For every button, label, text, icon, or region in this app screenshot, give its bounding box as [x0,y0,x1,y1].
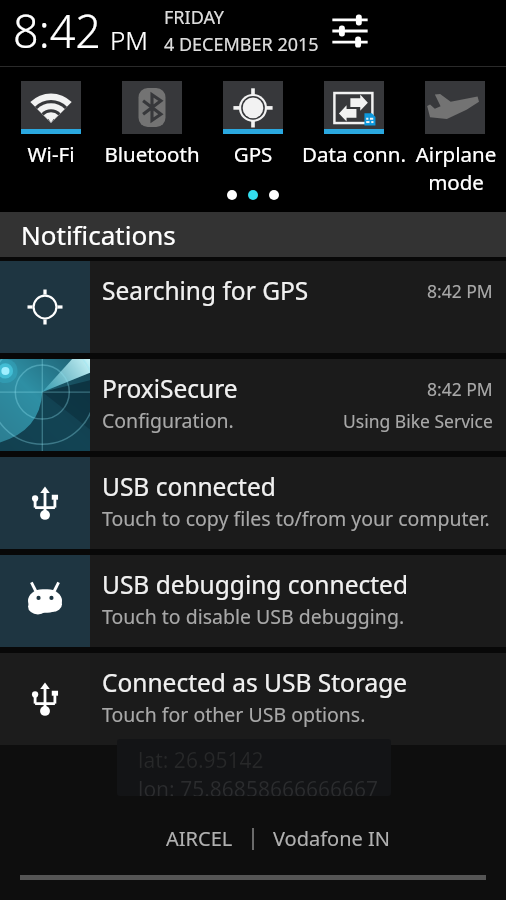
staticText: Configuration. [102,407,343,434]
button[interactable]: Connected as USB Storage [0,653,506,745]
staticText: Data conn. [284,140,424,168]
staticText: PM [110,22,148,57]
button[interactable]: Searching for GPS [0,261,506,353]
staticText: USB debugging connected [102,568,493,601]
staticText: Searching for GPS [102,274,427,307]
staticText: Notifications [21,217,176,252]
staticText: 4 DECEMBER 2015 [164,32,319,57]
button[interactable]: USB debugging connected [0,555,506,647]
button[interactable] [324,81,384,134]
button[interactable]: USB connected [0,457,506,549]
staticText: 8:42 PM [427,279,493,303]
staticText: Using Bike Service [343,409,493,433]
staticText: Connected as USB Storage [102,666,493,699]
staticText: Touch to copy files to/from your compute… [102,505,493,532]
button[interactable]: ProxiSecure [0,359,506,451]
staticText: GPS [183,140,323,168]
staticText: USB connected [102,470,493,503]
staticText: Touch to disable USB debugging. [102,603,493,630]
staticText: ProxiSecure [102,372,427,405]
staticText: Vodafone IN [273,825,391,852]
staticText: Airplane mode [386,140,506,196]
button[interactable] [223,81,283,134]
staticText: AIRCEL [166,825,233,852]
button[interactable] [425,81,485,134]
staticText: lon: 75.86858666666667 [138,775,379,796]
staticText: 8:42 [13,0,102,61]
staticText: Touch for other USB options. [102,701,493,728]
button[interactable] [122,81,182,134]
staticText: Wi-Fi [0,140,121,168]
button[interactable] [21,81,81,134]
staticText: lat: 26.95142 [138,746,264,775]
staticText: Bluetooth [82,140,222,168]
staticText: 8:42 PM [427,377,493,401]
staticText: FRIDAY [164,5,225,30]
button[interactable]: Settings [327,8,373,54]
